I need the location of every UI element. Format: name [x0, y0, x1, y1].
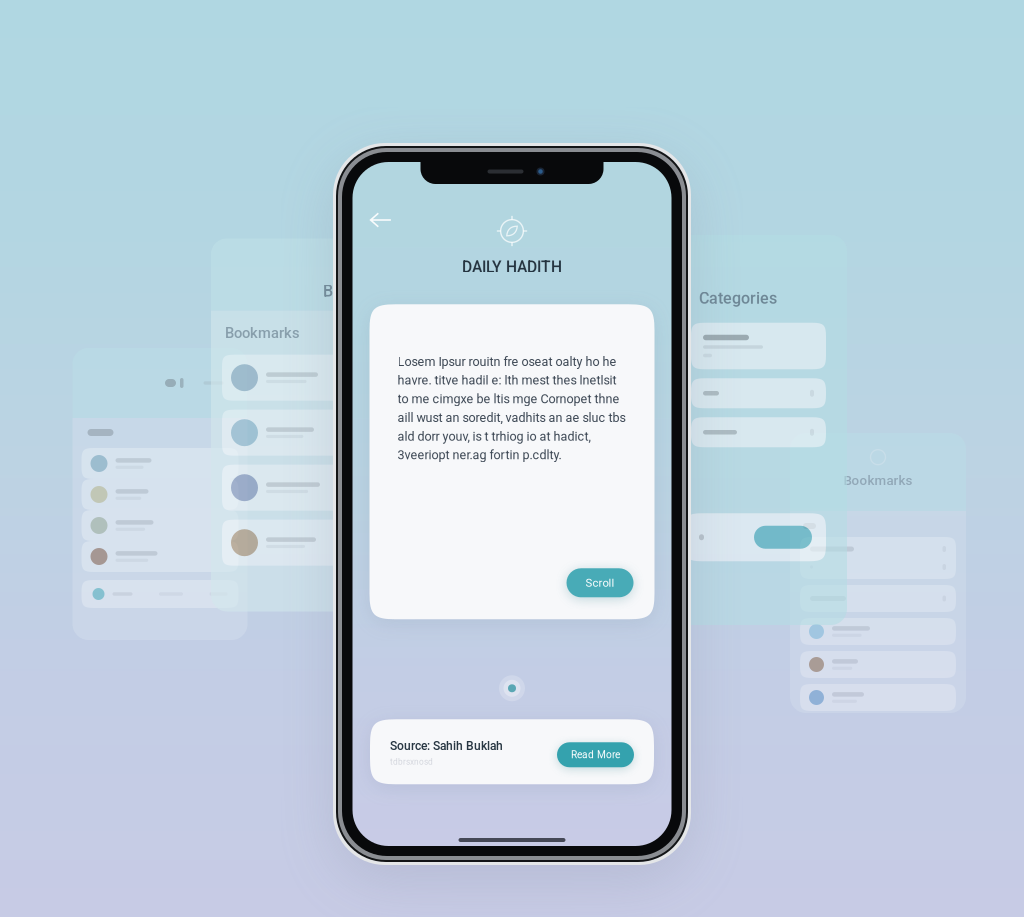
button[interactable]: Scroll	[566, 568, 633, 597]
staticText: Bookm	[323, 282, 373, 301]
staticText: Read More	[571, 749, 620, 761]
staticText: Bookmarks	[225, 324, 300, 342]
staticText: Scroll	[585, 576, 614, 589]
button[interactable]: Compass	[495, 214, 529, 248]
staticText: Bookmarks	[843, 473, 912, 488]
staticText: tdbrsxnosd	[390, 757, 433, 767]
staticText: Losem Ipsur rouitn fre oseat oalty ho he…	[397, 354, 625, 462]
staticText: DAILY HADITH	[462, 258, 562, 276]
staticText: Source: Sahih Buklah	[390, 739, 503, 753]
button[interactable]: Back	[363, 205, 397, 235]
staticText: Categories	[699, 289, 777, 308]
button[interactable]: Read More	[557, 742, 634, 767]
